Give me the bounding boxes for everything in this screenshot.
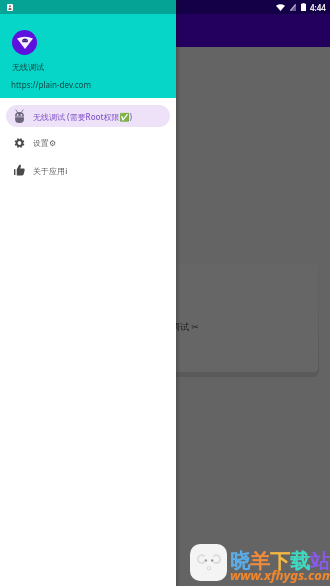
button[interactable]: 设置⚙ <box>6 132 170 154</box>
staticText: 无线调试 (需要Root权限✅) <box>33 111 132 122</box>
staticText: https://plain-dev.com <box>11 79 91 90</box>
staticText: 开始无线调试 ✂ <box>135 320 199 332</box>
staticText: 下 <box>270 549 290 574</box>
button[interactable]: 关于应用ℹ <box>6 159 170 181</box>
staticText: 载 <box>290 549 310 574</box>
staticText: 羊 <box>250 549 270 574</box>
staticText: 晓 <box>230 549 250 574</box>
staticText: 4:44 <box>310 2 326 13</box>
staticText: www.xfhygs.com <box>230 566 330 584</box>
button[interactable]: 无线调试 (需要Root权限✅) <box>6 105 170 127</box>
staticText: 无线调试 <box>12 62 44 72</box>
staticText: 关于应用ℹ <box>33 165 68 176</box>
staticText: 设置⚙ <box>33 138 57 148</box>
staticText: 站 <box>310 549 330 574</box>
